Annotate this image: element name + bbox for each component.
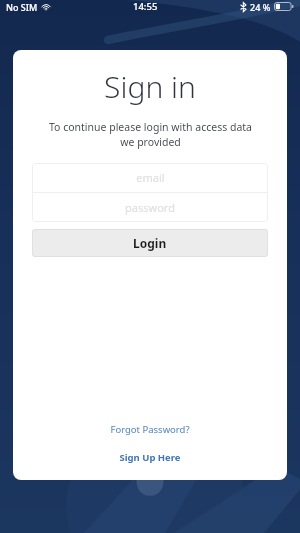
- button[interactable]: email: [32, 163, 268, 192]
- button[interactable]: Forgot Password?: [13, 419, 287, 440]
- staticText: password: [125, 200, 175, 215]
- other: Bluetooth: [240, 2, 247, 12]
- button[interactable]: password: [32, 193, 268, 222]
- staticText: Sign Up Here: [119, 451, 181, 464]
- staticText: No SIM: [6, 1, 38, 13]
- staticText: Forgot Password?: [110, 423, 190, 436]
- staticText: email: [136, 170, 165, 185]
- other: Battery 24 percent: [274, 2, 294, 11]
- staticText: Sign in: [104, 66, 196, 107]
- button[interactable]: Login: [32, 229, 268, 257]
- staticText: Login: [133, 235, 167, 251]
- other: Wi-Fi: [41, 2, 51, 12]
- button[interactable]: Sign Up Here: [13, 447, 287, 468]
- staticText: 24 %: [250, 1, 271, 13]
- staticText: 14:55: [133, 0, 158, 13]
- staticText: To continue please login with access dat…: [49, 120, 252, 149]
